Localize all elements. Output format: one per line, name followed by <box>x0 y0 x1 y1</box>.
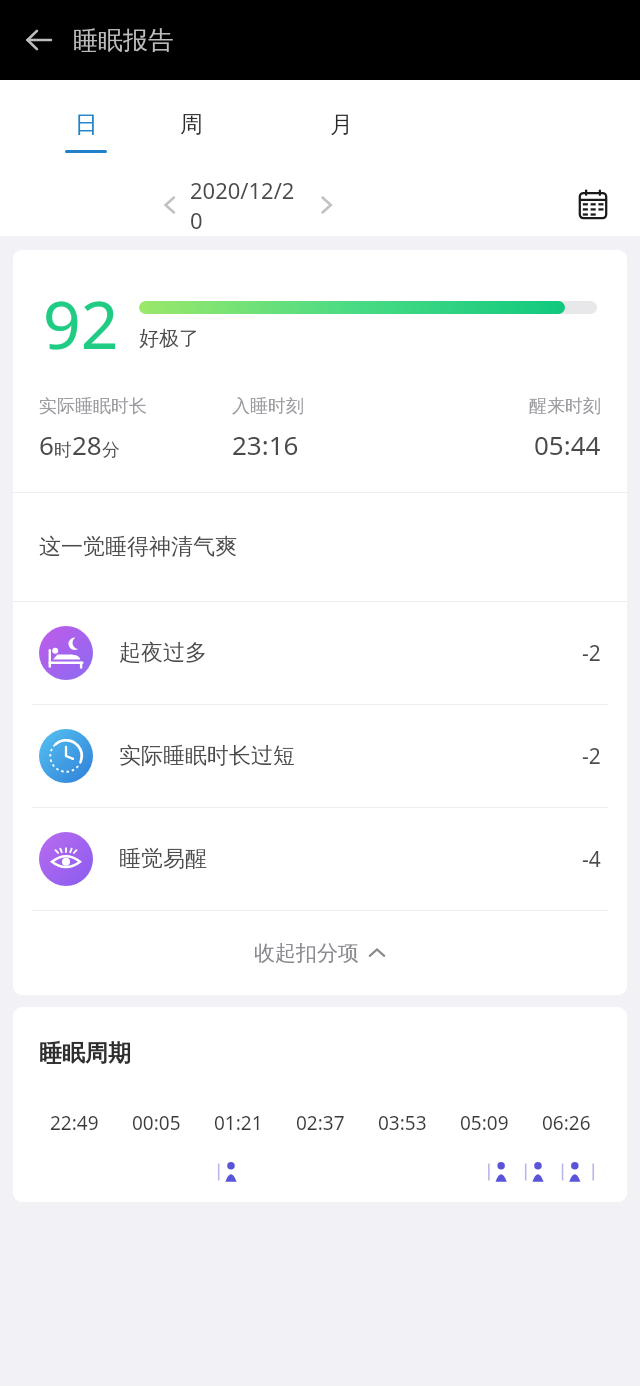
button[interactable]: 周 <box>170 98 320 150</box>
staticText: -2 <box>582 742 601 771</box>
button[interactable]: 这一觉睡得神清气爽 <box>13 493 627 601</box>
staticText: -2 <box>582 639 601 668</box>
staticText: 醒来时刻 <box>529 395 601 418</box>
staticText: 收起扣分项 <box>254 940 359 966</box>
staticText: 06:26 <box>542 1110 591 1136</box>
staticText: 05:09 <box>460 1110 509 1136</box>
staticText: 好极了 <box>139 326 199 351</box>
button[interactable]: 日 <box>65 98 170 150</box>
staticText: 实际睡眠时长 <box>39 395 147 418</box>
staticText: 入睡时刻 <box>232 395 304 418</box>
staticText: 这一觉睡得神清气爽 <box>39 533 237 561</box>
staticText: 92 <box>43 278 119 368</box>
button[interactable]: 收起扣分项 <box>13 911 627 995</box>
button[interactable]: Pick date <box>566 178 620 232</box>
staticText: 22:49 <box>50 1110 99 1136</box>
staticText: 时 <box>54 439 72 462</box>
button[interactable]: 睡觉易醒 <box>13 808 627 910</box>
staticText: 6 <box>39 427 54 462</box>
staticText: 日 <box>75 110 98 139</box>
staticText: 00:05 <box>132 1110 181 1136</box>
button[interactable]: 起夜过多 <box>13 602 627 704</box>
staticText: 睡眠周期 <box>39 1039 131 1068</box>
staticText: 起夜过多 <box>119 639 582 667</box>
staticText: 05:44 <box>534 427 601 462</box>
button[interactable]: Previous day <box>150 185 190 225</box>
staticText: 2020/12/20 <box>190 175 306 235</box>
staticText: 03:53 <box>378 1110 427 1136</box>
button[interactable]: 月 <box>320 98 470 150</box>
staticText: 实际睡眠时长过短 <box>119 742 582 770</box>
staticText: 睡觉易醒 <box>119 845 582 873</box>
staticText: 02:37 <box>296 1110 345 1136</box>
staticText: 23:16 <box>232 427 299 462</box>
staticText: 周 <box>180 110 203 139</box>
staticText: 01:21 <box>214 1110 263 1136</box>
staticText: 28 <box>72 427 102 462</box>
staticText: -4 <box>582 845 601 874</box>
staticText: 分 <box>102 439 120 462</box>
staticText: 睡眠报告 <box>73 25 173 56</box>
button[interactable]: Back <box>17 18 61 62</box>
button[interactable]: Next day <box>306 185 346 225</box>
staticText: 月 <box>330 110 353 139</box>
button[interactable]: 实际睡眠时长过短 <box>13 705 627 807</box>
